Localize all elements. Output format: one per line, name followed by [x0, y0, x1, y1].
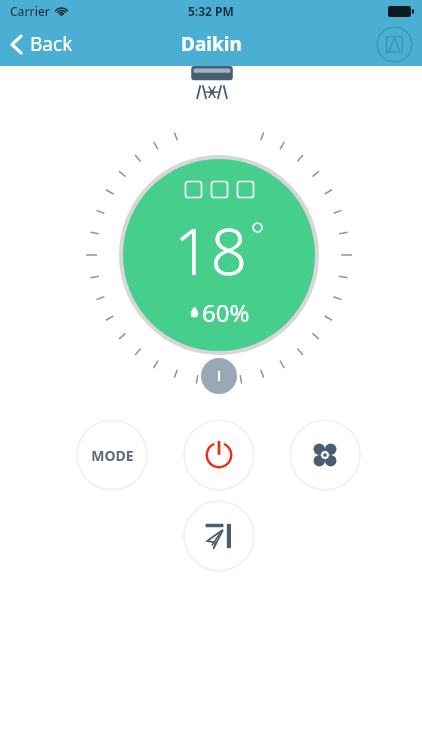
staticText: Carrier	[10, 3, 50, 19]
staticText: 60%	[202, 296, 250, 329]
button[interactable]: App logo	[376, 26, 413, 63]
staticText: Daikin	[181, 31, 242, 57]
button[interactable]: Swing louver	[183, 500, 255, 572]
button[interactable]: Back	[0, 22, 87, 66]
button[interactable]: Power	[183, 419, 255, 491]
staticText: Back	[30, 31, 73, 57]
staticText: 5:32 PM	[188, 3, 234, 19]
staticText: 18	[174, 207, 248, 294]
button[interactable]: Fan speed	[289, 419, 361, 491]
staticText: MODE	[91, 446, 134, 465]
button[interactable]: Mode	[76, 419, 148, 491]
